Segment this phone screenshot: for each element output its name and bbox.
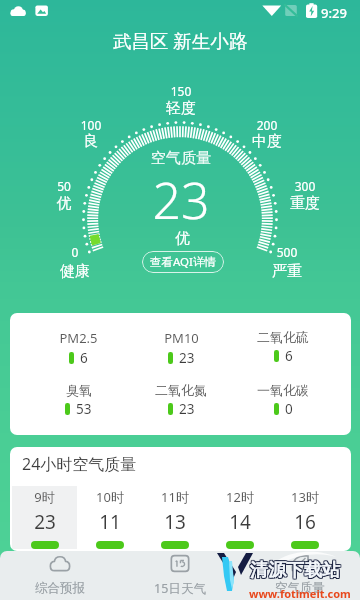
staticText: 良 bbox=[61, 132, 121, 151]
button[interactable]: 9时 bbox=[12, 486, 77, 549]
staticText: 200 bbox=[237, 117, 297, 133]
staticText: 中度 bbox=[237, 132, 297, 151]
staticText: 优 bbox=[175, 229, 190, 248]
staticText: 0 bbox=[285, 400, 293, 418]
staticText: 23 bbox=[34, 509, 56, 535]
staticText: 健康 bbox=[45, 262, 105, 281]
staticText: 23 bbox=[152, 166, 210, 234]
button[interactable]: 查看AQI详情 bbox=[142, 251, 224, 273]
staticText: 臭氧 bbox=[66, 382, 92, 398]
button[interactable]: 11时 bbox=[142, 486, 207, 549]
button[interactable]: 空气质量 bbox=[240, 551, 360, 600]
staticText: 23 bbox=[179, 349, 195, 367]
staticText: 23 bbox=[179, 400, 195, 418]
staticText: 300 bbox=[275, 178, 335, 194]
button[interactable]: 12时 bbox=[207, 486, 272, 549]
staticText: 武昌区 新生小路 bbox=[113, 28, 248, 53]
staticText: 轻度 bbox=[151, 99, 211, 118]
staticText: 二氧化硫 bbox=[257, 329, 309, 345]
button[interactable]: 综合预报 bbox=[0, 551, 120, 600]
staticText: 13时 bbox=[291, 488, 319, 506]
staticText: 清源下载站 bbox=[250, 560, 340, 583]
staticText: 6 bbox=[80, 349, 88, 367]
staticText: 综合预报 bbox=[35, 580, 85, 596]
staticText: 优 bbox=[34, 194, 94, 213]
staticText: 重度 bbox=[275, 194, 335, 213]
staticText: 6 bbox=[285, 347, 293, 365]
staticText: 清源下载站 bbox=[249, 559, 339, 582]
staticText: 空气质量 bbox=[275, 580, 325, 596]
staticText: PM10 bbox=[164, 329, 199, 347]
staticText: 空气质量 bbox=[151, 149, 211, 168]
staticText: 9:29 bbox=[321, 4, 347, 22]
staticText: 13 bbox=[164, 509, 186, 535]
staticText: 清源下载站 bbox=[250, 559, 340, 582]
staticText: 严重 bbox=[257, 262, 317, 281]
staticText: PM2.5 bbox=[59, 329, 98, 347]
staticText: 清源下载站 bbox=[250, 558, 340, 581]
staticText: 11 bbox=[99, 509, 121, 535]
staticText: 24小时空气质量 bbox=[22, 453, 137, 475]
staticText: 清源下载站 bbox=[249, 558, 339, 581]
staticText: 清源下载站 bbox=[251, 559, 341, 582]
button[interactable]: 10时 bbox=[77, 486, 142, 549]
staticText: www.fotimeit.com bbox=[249, 586, 351, 600]
staticText: 二氧化氮 bbox=[155, 382, 207, 398]
staticText: 50 bbox=[34, 178, 94, 194]
staticText: 150 bbox=[151, 83, 211, 99]
staticText: 清源下载站 bbox=[251, 560, 341, 583]
staticText: 0 bbox=[45, 244, 105, 260]
staticText: 清源下载站 bbox=[249, 560, 339, 583]
staticText: 500 bbox=[257, 244, 317, 260]
staticText: 14 bbox=[229, 509, 251, 535]
staticText: 16 bbox=[294, 509, 316, 535]
staticText: 一氧化碳 bbox=[257, 382, 309, 398]
staticText: 100 bbox=[61, 117, 121, 133]
staticText: 11时 bbox=[161, 488, 189, 506]
staticText: 10时 bbox=[96, 488, 124, 506]
staticText: 查看AQI详情 bbox=[150, 254, 216, 270]
staticText: 清源下载站 bbox=[251, 558, 341, 581]
staticText: 9时 bbox=[34, 488, 55, 506]
staticText: 15日天气 bbox=[154, 580, 206, 597]
button[interactable]: 13时 bbox=[272, 486, 337, 549]
staticText: 12时 bbox=[226, 488, 254, 506]
button[interactable]: 15日天气 bbox=[120, 551, 240, 600]
staticText: 53 bbox=[76, 400, 92, 418]
